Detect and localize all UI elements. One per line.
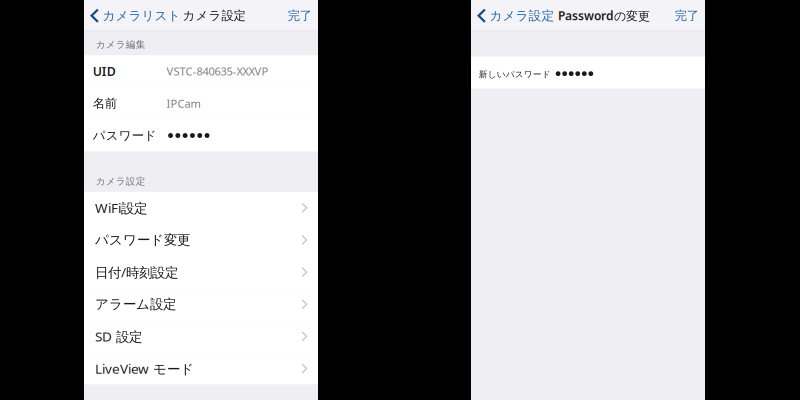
button[interactable]: パスワード変更 <box>84 224 318 256</box>
staticText: 完了 <box>288 8 312 23</box>
staticText: UID <box>93 63 116 80</box>
staticText: カメラ設定 <box>489 8 554 24</box>
staticText: カメラ設定 <box>96 175 146 187</box>
button[interactable]: 日付/時刻設定 <box>84 256 318 288</box>
staticText: カメラリスト <box>102 8 180 24</box>
button[interactable]: カメラリスト <box>84 0 180 31</box>
staticText: IPCam <box>166 96 200 111</box>
button[interactable]: 完了 <box>280 0 318 31</box>
staticText: 日付/時刻設定 <box>95 263 178 281</box>
button[interactable]: アラーム設定 <box>84 288 318 320</box>
button[interactable]: SD 設定 <box>84 320 318 352</box>
staticText: 完了 <box>675 8 699 23</box>
staticText: カメラ編集 <box>96 39 146 51</box>
button[interactable]: カメラ設定 <box>471 0 554 31</box>
button[interactable]: 完了 <box>667 0 705 31</box>
staticText: VSTC-840635-XXXVP <box>166 64 268 79</box>
staticText: LiveView モード <box>95 359 194 378</box>
staticText: 新しいパスワード <box>479 69 551 80</box>
button[interactable]: LiveView モード <box>84 352 318 384</box>
staticText: カメラ設定 <box>183 8 246 23</box>
staticText: パスワード <box>93 128 157 143</box>
staticText: WiFi設定 <box>95 199 147 217</box>
staticText: SD 設定 <box>95 327 142 346</box>
staticText: 名前 <box>93 96 117 111</box>
button[interactable]: WiFi設定 <box>84 192 318 224</box>
staticText: アラーム設定 <box>95 296 176 313</box>
staticText: パスワード変更 <box>95 231 190 248</box>
staticText: Passwordの変更 <box>558 7 650 24</box>
